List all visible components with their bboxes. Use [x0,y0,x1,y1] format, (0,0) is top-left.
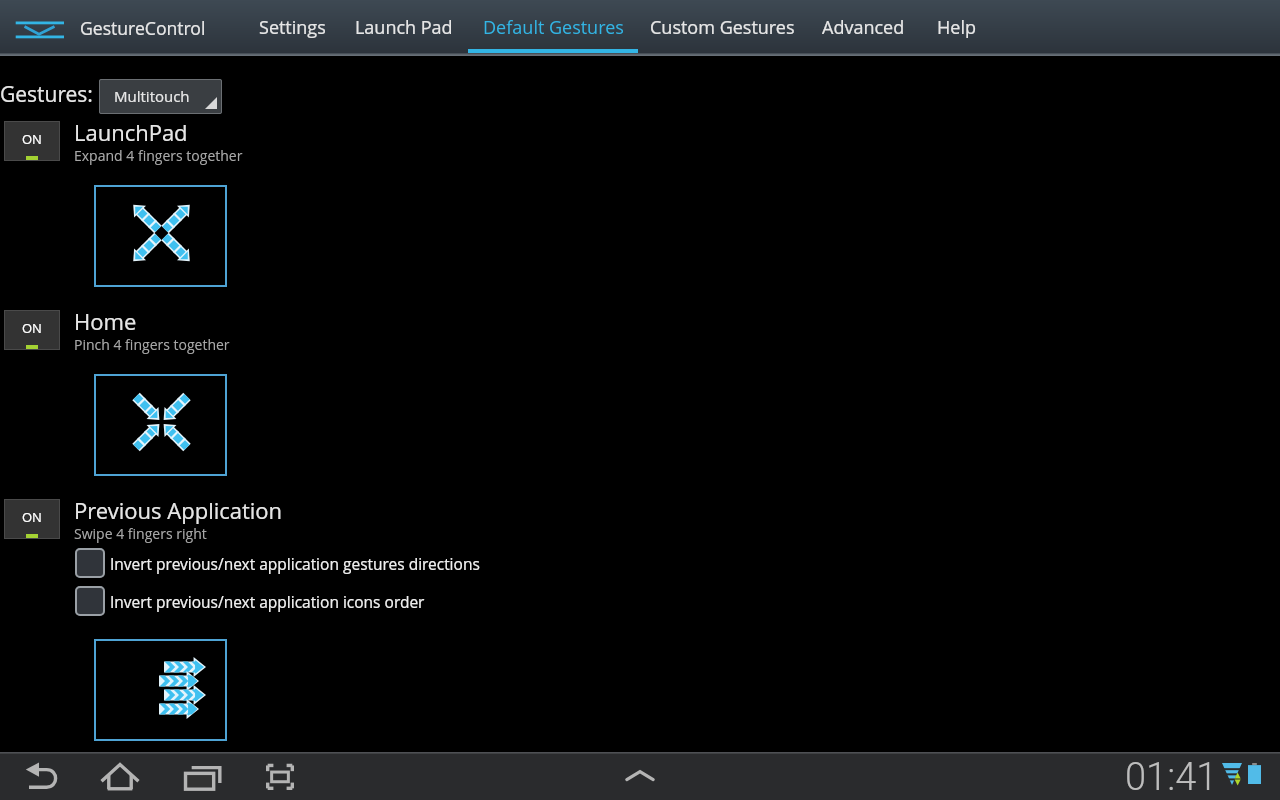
button[interactable]: Settings [245,0,339,56]
staticText: Settings [259,15,326,40]
button[interactable]: Invert previous/next application gesture… [75,548,480,578]
button[interactable]: Default Gestures [468,0,638,56]
button[interactable]: Custom Gestures [637,0,808,56]
staticText: ON [22,508,42,526]
button[interactable]: Screenshot [256,752,304,800]
staticText: Default Gestures [483,15,624,40]
button[interactable]: Gesture enabled, ON [4,310,60,350]
staticText: Home [74,306,137,336]
staticText: Swipe 4 fingers right [74,524,207,543]
staticText: Invert previous/next application gesture… [110,553,480,574]
button[interactable]: Advanced [808,0,919,56]
button[interactable]: Back [17,752,65,800]
button[interactable]: Pinch gesture [94,374,227,476]
staticText: ON [22,130,42,148]
staticText: Launch Pad [355,15,453,40]
staticText: Custom Gestures [650,15,795,40]
staticText: Pinch 4 fingers together [74,335,230,354]
button[interactable]: Expand gesture [94,185,227,287]
button[interactable]: Launch Pad [340,0,467,56]
button[interactable]: GestureControl logo [10,14,70,44]
staticText: Gestures: [0,80,93,109]
staticText: LaunchPad [74,117,188,147]
staticText: GestureControl [80,16,206,40]
button[interactable]: Home [96,752,144,800]
button[interactable]: Expand status bar [616,752,664,800]
button[interactable]: Gesture enabled, ON [4,121,60,161]
staticText: Invert previous/next application icons o… [110,591,425,612]
staticText: Help [937,15,976,40]
button[interactable]: Swipe right gesture [94,639,227,741]
button[interactable]: Recent apps [180,752,228,800]
button[interactable]: Gesture set: Multitouch [99,79,222,114]
staticText: 01:41 [1125,755,1218,800]
staticText: Previous Application [74,495,283,525]
staticText: Advanced [822,15,905,40]
button[interactable]: Invert previous/next application icons o… [75,586,425,616]
staticText: Multitouch [114,86,190,106]
staticText: Expand 4 fingers together [74,146,243,165]
button[interactable]: GestureControl [74,0,216,56]
button[interactable]: Gesture enabled, ON [4,499,60,539]
button[interactable]: Help [921,0,991,56]
staticText: ON [22,319,42,337]
